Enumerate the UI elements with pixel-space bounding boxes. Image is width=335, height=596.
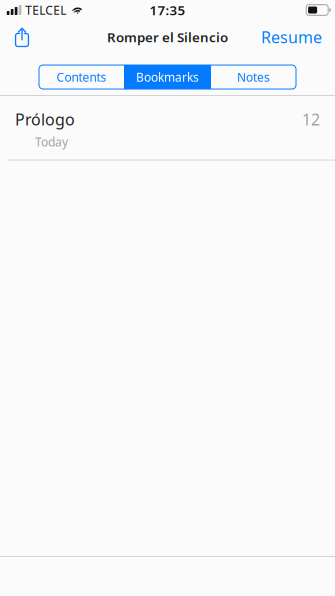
staticText: TELCEL <box>25 2 66 18</box>
staticText: Notes <box>237 69 270 85</box>
button[interactable]: Notes <box>211 65 296 89</box>
staticText: 12 <box>302 109 320 130</box>
staticText: Contents <box>56 69 106 85</box>
button[interactable]: Resume <box>261 22 322 52</box>
staticText: Today <box>35 134 68 150</box>
staticText: Romper el Silencio <box>107 28 228 46</box>
staticText: Prólogo <box>15 109 75 130</box>
button[interactable]: Bookmarks <box>125 65 210 89</box>
staticText: Bookmarks <box>136 69 199 85</box>
staticText: 17:35 <box>149 1 185 19</box>
button[interactable]: Prólogo <box>0 96 335 160</box>
staticText: Resume <box>261 26 322 48</box>
button[interactable]: Contents <box>39 65 124 89</box>
button[interactable]: Share <box>7 22 37 52</box>
